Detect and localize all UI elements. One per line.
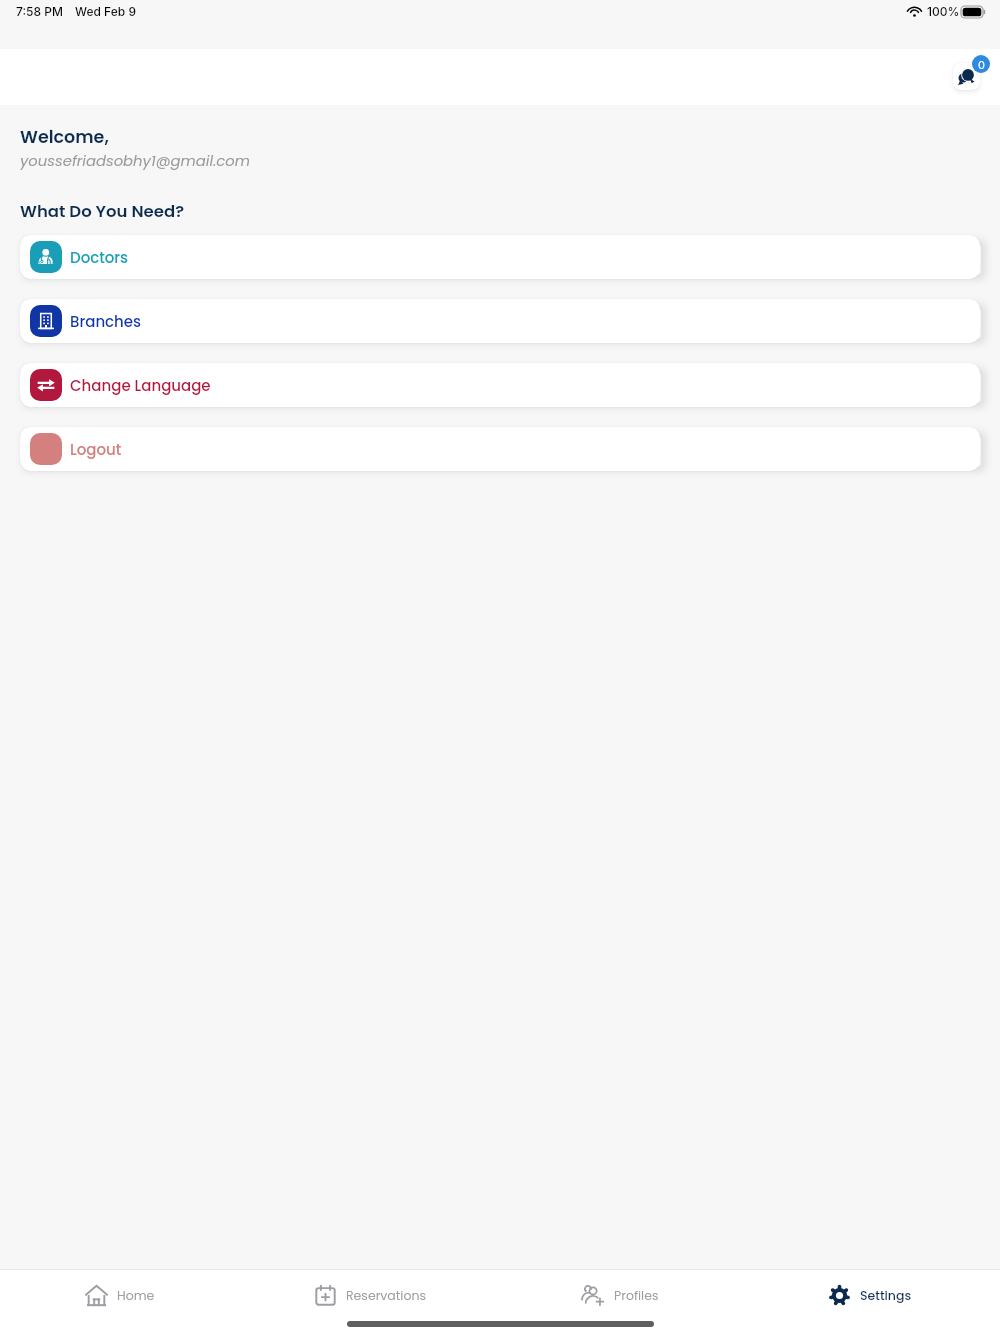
staticText: Wed Feb 9 [75, 4, 136, 19]
staticText: youssefriadsobhy1@gmail.com [20, 150, 250, 171]
staticText: 100% [927, 4, 960, 19]
staticText: 7:58 PM [16, 4, 63, 19]
staticText: Logout [70, 439, 122, 460]
staticText: Change Language [70, 375, 211, 396]
staticText: Doctors [70, 247, 129, 268]
button[interactable]: Settings [745, 1273, 995, 1318]
staticText: Reservations [346, 1287, 426, 1304]
staticText: 0 [978, 58, 985, 71]
staticText: Profiles [614, 1287, 659, 1304]
button[interactable]: Profiles [495, 1273, 745, 1318]
button[interactable]: Doctors [20, 235, 980, 279]
staticText: What Do You Need? [20, 200, 185, 223]
staticText: Branches [70, 311, 142, 332]
staticText: Welcome, [20, 125, 109, 150]
button[interactable]: Change Language [20, 363, 980, 407]
button[interactable]: Branches [20, 299, 980, 343]
button[interactable]: Logout [20, 427, 980, 471]
button[interactable]: Messages [953, 54, 990, 90]
button[interactable]: Reservations [245, 1273, 495, 1318]
button[interactable]: Home [0, 1273, 245, 1318]
staticText: Home [117, 1287, 155, 1304]
staticText: Settings [860, 1287, 912, 1304]
